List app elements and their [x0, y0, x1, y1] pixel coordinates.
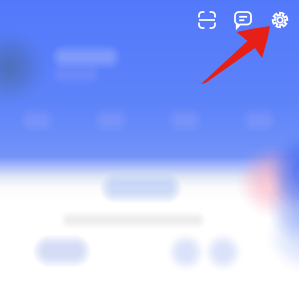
button[interactable]: Settings — [264, 4, 296, 36]
button[interactable]: Messages — [227, 4, 259, 36]
button[interactable]: Scan — [191, 4, 223, 36]
